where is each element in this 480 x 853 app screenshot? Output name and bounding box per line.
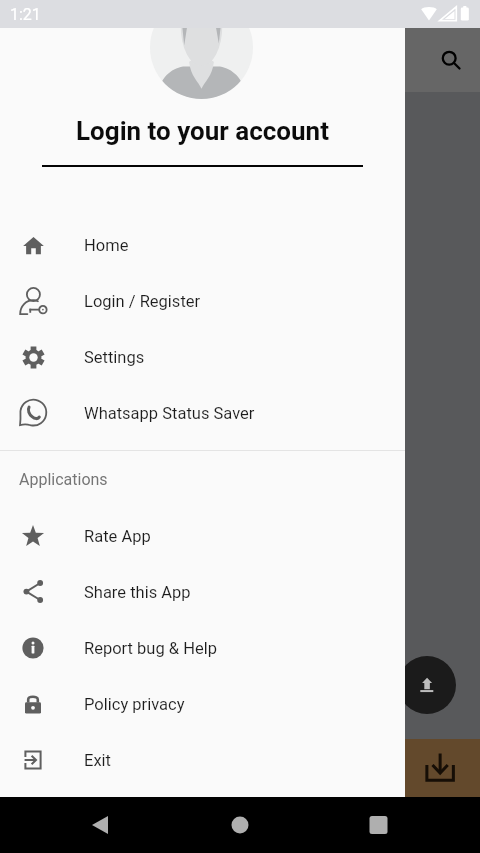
- staticText: Exit: [84, 751, 111, 770]
- staticText: Settings: [84, 348, 145, 367]
- button[interactable]: Exit: [0, 732, 405, 788]
- button[interactable]: Search: [429, 38, 473, 82]
- staticText: Login / Register: [84, 292, 201, 311]
- button[interactable]: Download: [418, 745, 462, 789]
- button[interactable]: Settings: [0, 329, 405, 385]
- button[interactable]: Report bug & Help: [0, 620, 405, 676]
- staticText: 1:21: [10, 5, 41, 24]
- staticText: Report bug & Help: [84, 639, 217, 658]
- button[interactable]: Rate App: [0, 508, 405, 564]
- button[interactable]: Policy privacy: [0, 676, 405, 732]
- staticText: Home: [84, 236, 129, 255]
- staticText: Rate App: [84, 527, 151, 546]
- staticText: Whatsapp Status Saver: [84, 404, 255, 423]
- button[interactable]: Home: [0, 217, 405, 273]
- button[interactable]: Upload: [398, 656, 456, 714]
- staticText: Login to your account: [76, 116, 329, 146]
- staticText: Share this App: [84, 583, 191, 602]
- button[interactable]: Share this App: [0, 564, 405, 620]
- staticText: Applications: [19, 470, 108, 489]
- staticText: Policy privacy: [84, 695, 185, 714]
- button[interactable]: Login / Register: [0, 273, 405, 329]
- button[interactable]: Whatsapp Status Saver: [0, 385, 405, 441]
